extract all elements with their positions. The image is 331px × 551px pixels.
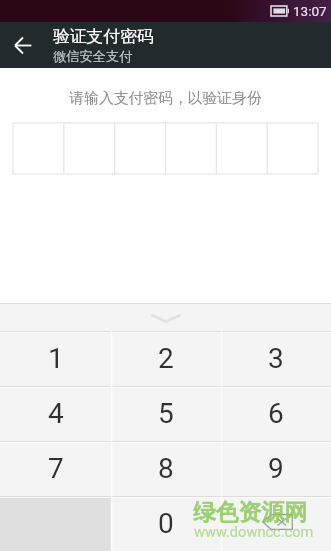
button[interactable]: 7 bbox=[0, 441, 111, 496]
staticText: 3 bbox=[268, 342, 284, 375]
staticText: www.downcc.com bbox=[194, 523, 314, 540]
staticText: 0 bbox=[158, 507, 174, 540]
button[interactable] bbox=[0, 496, 111, 551]
button[interactable]: 0 bbox=[111, 496, 221, 551]
button[interactable]: 6 bbox=[221, 386, 331, 441]
button[interactable]: 8 bbox=[111, 441, 221, 496]
staticText: 8 bbox=[158, 452, 174, 485]
button[interactable]: Back bbox=[0, 22, 46, 68]
staticText: 验证支付密码 bbox=[53, 26, 154, 47]
button[interactable]: 9 bbox=[221, 441, 331, 496]
button[interactable]: 1 bbox=[0, 331, 111, 386]
button[interactable]: Delete bbox=[221, 496, 331, 551]
button[interactable]: 4 bbox=[0, 386, 111, 441]
staticText: 2 bbox=[158, 342, 174, 375]
staticText: 1 bbox=[48, 342, 64, 375]
other: Delete bbox=[262, 514, 293, 530]
staticText: 6 bbox=[268, 397, 284, 430]
staticText: 请输入支付密码，以验证身份 bbox=[0, 89, 331, 108]
staticText: 绿色资源网 bbox=[193, 498, 307, 527]
staticText: 微信安全支付 bbox=[53, 48, 133, 65]
staticText: 7 bbox=[48, 452, 64, 485]
button[interactable]: Hide keyboard bbox=[0, 303, 331, 331]
staticText: 9 bbox=[268, 452, 284, 485]
button[interactable]: 5 bbox=[111, 386, 221, 441]
staticText: 5 bbox=[158, 397, 174, 430]
button[interactable]: 2 bbox=[111, 331, 221, 386]
staticText: 13:07 bbox=[293, 3, 327, 19]
staticText: 4 bbox=[48, 397, 64, 430]
button[interactable]: 3 bbox=[221, 331, 331, 386]
